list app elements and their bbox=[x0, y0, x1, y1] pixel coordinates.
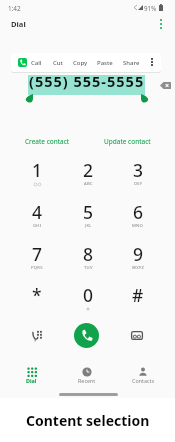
staticText: Cut bbox=[53, 59, 63, 67]
staticText: DEF bbox=[134, 181, 143, 187]
staticText: 2 bbox=[83, 158, 94, 182]
staticText: MNO bbox=[132, 223, 144, 229]
button[interactable]: Backspace bbox=[155, 77, 175, 93]
staticText: Dial bbox=[26, 377, 37, 384]
button[interactable]: 0 bbox=[64, 279, 112, 315]
staticText: PQRS bbox=[31, 265, 43, 271]
staticText: 1:42 bbox=[8, 4, 21, 13]
staticText: Create contact bbox=[25, 137, 70, 146]
staticText: Share bbox=[123, 59, 140, 67]
button[interactable]: Call bbox=[18, 58, 27, 67]
button[interactable]: Create contact bbox=[8, 133, 87, 149]
button[interactable]: 4 bbox=[13, 196, 61, 232]
staticText: Content selection bbox=[26, 411, 150, 430]
button[interactable]: * bbox=[13, 279, 61, 315]
button[interactable]: 9 bbox=[114, 238, 162, 274]
button[interactable]: Call bbox=[74, 323, 99, 348]
button[interactable]: # bbox=[114, 279, 162, 315]
button[interactable]: Update contact bbox=[87, 133, 167, 149]
staticText: 91% bbox=[144, 4, 157, 12]
button[interactable]: 2 bbox=[64, 154, 112, 190]
button[interactable]: Share bbox=[123, 59, 140, 67]
button[interactable]: (555) 555-5555 bbox=[28, 75, 145, 95]
staticText: ABC bbox=[84, 181, 93, 187]
button[interactable]: Contacts bbox=[115, 363, 171, 387]
staticText: Recent bbox=[78, 377, 96, 384]
staticText: Paste bbox=[97, 59, 113, 67]
button[interactable]: 3 bbox=[114, 154, 162, 190]
button[interactable]: More bbox=[145, 55, 158, 68]
staticText: GHI bbox=[33, 223, 42, 229]
staticText: * bbox=[32, 283, 42, 307]
button[interactable]: 7 bbox=[13, 238, 61, 274]
staticText: (555) 555-5555 bbox=[29, 71, 145, 91]
button[interactable]: Recent bbox=[59, 363, 115, 387]
button[interactable]: Cut bbox=[53, 59, 63, 67]
button[interactable]: 1 bbox=[13, 154, 61, 190]
staticText: 9 bbox=[133, 242, 144, 266]
staticText: 0 bbox=[83, 283, 94, 307]
staticText: Copy bbox=[73, 59, 88, 67]
button[interactable]: More options bbox=[152, 15, 169, 32]
button[interactable]: 6 bbox=[114, 196, 162, 232]
staticText: 8 bbox=[83, 242, 94, 266]
staticText: 7 bbox=[32, 242, 43, 266]
staticText: Dial bbox=[11, 19, 26, 29]
button[interactable]: Hide keypad bbox=[127, 325, 147, 345]
staticText: TUV bbox=[84, 265, 93, 271]
staticText: JKL bbox=[85, 223, 92, 229]
staticText: WXYZ bbox=[132, 265, 145, 271]
staticText: Call bbox=[31, 59, 42, 67]
staticText: # bbox=[132, 283, 144, 307]
button[interactable]: 5 bbox=[64, 196, 112, 232]
staticText: 5 bbox=[83, 200, 94, 224]
button[interactable]: 8 bbox=[64, 238, 112, 274]
button[interactable]: Video call bbox=[27, 325, 47, 345]
staticText: Update contact bbox=[104, 137, 151, 146]
staticText: 1 bbox=[32, 158, 43, 182]
staticText: Contacts bbox=[132, 377, 155, 384]
staticText: 6 bbox=[133, 200, 144, 224]
button[interactable]: Copy bbox=[73, 59, 88, 67]
button[interactable]: Call bbox=[31, 59, 42, 67]
staticText: 3 bbox=[133, 158, 144, 182]
button[interactable]: Dial bbox=[4, 363, 59, 387]
staticText: 4 bbox=[32, 200, 43, 224]
button[interactable]: Paste bbox=[97, 59, 113, 67]
